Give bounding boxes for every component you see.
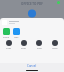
button[interactable]: Cancel bbox=[0, 63, 64, 69]
staticText: OFFICE TO PDF bbox=[0, 2, 64, 6]
staticText: Share bbox=[3, 36, 9, 39]
staticText: Mail bbox=[14, 36, 19, 39]
button[interactable]: Mail bbox=[11, 27, 21, 40]
button[interactable]: More bbox=[47, 40, 63, 50]
staticText: Print bbox=[21, 47, 26, 50]
staticText: Copy bbox=[6, 47, 12, 50]
staticText: More bbox=[52, 47, 58, 50]
staticText: Save bbox=[37, 47, 42, 50]
button[interactable]: Copy bbox=[1, 40, 16, 50]
button[interactable]: Share bbox=[1, 27, 11, 40]
button[interactable]: Save bbox=[31, 40, 47, 50]
button[interactable]: Print bbox=[16, 40, 31, 50]
staticText: Cancel bbox=[27, 64, 37, 68]
